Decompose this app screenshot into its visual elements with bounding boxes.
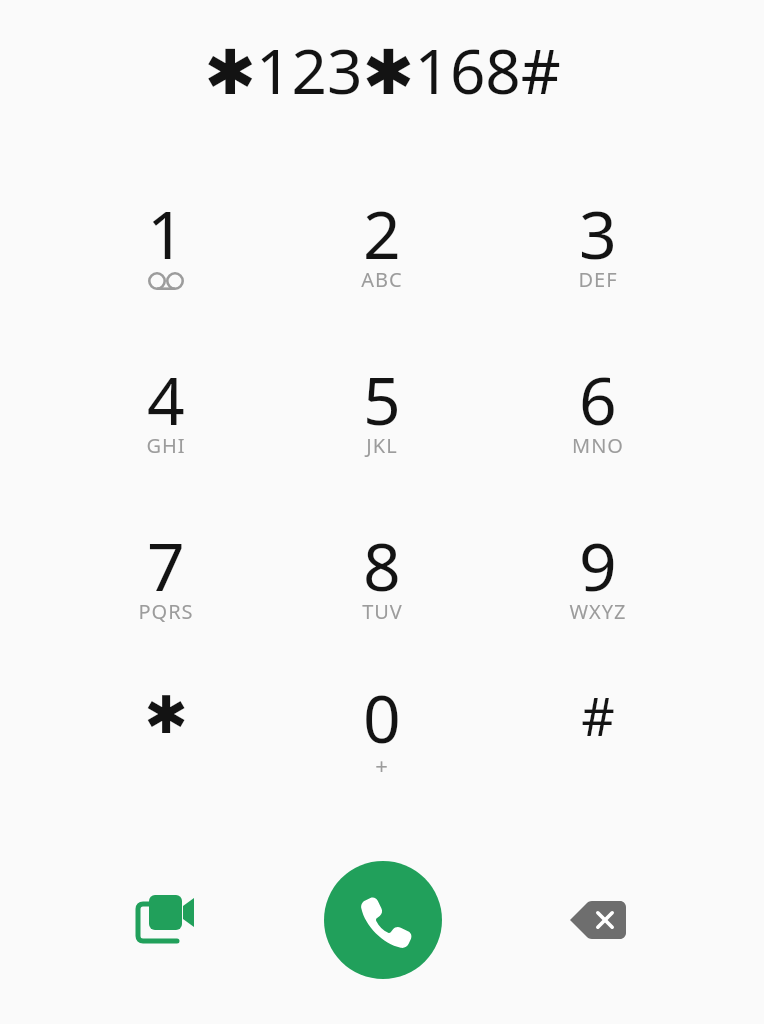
staticText: DEF [578,266,618,293]
staticText: 6 [579,354,617,440]
button[interactable]: 4 [66,354,266,504]
staticText: 5 [363,354,401,440]
button[interactable]: 1 [66,188,266,338]
staticText: 7 [147,520,185,606]
button[interactable]: 0 [282,672,482,822]
staticText: 2 [363,188,401,274]
button[interactable]: 5 [282,354,482,504]
staticText: 0 [363,672,401,758]
staticText: 9 [579,520,617,606]
button[interactable]: Video call [106,860,226,980]
staticText: 4 [147,354,185,440]
staticText: GHI [146,432,186,459]
staticText: JKL [366,432,398,459]
staticText: 1 [147,188,185,274]
staticText: PQRS [138,598,194,625]
button[interactable]: 7 [66,520,266,670]
button[interactable]: ✱ [66,672,266,822]
staticText: 8 [363,520,401,606]
button[interactable]: 6 [498,354,698,504]
staticText: TUV [362,598,403,625]
staticText: MNO [572,432,624,459]
button[interactable]: 8 [282,520,482,670]
staticText: 3 [579,188,617,274]
staticText: ✱ [144,685,188,746]
staticText: # [581,680,615,751]
button[interactable]: Delete [538,860,658,980]
staticText: + [375,750,389,780]
button[interactable]: 9 [498,520,698,670]
button[interactable]: # [498,672,698,822]
button[interactable]: Call [324,861,442,979]
staticText: ✱123✱168# [204,28,561,112]
button[interactable]: 3 [498,188,698,338]
button[interactable]: 2 [282,188,482,338]
staticText: WXYZ [569,598,627,625]
staticText: ABC [361,266,403,293]
